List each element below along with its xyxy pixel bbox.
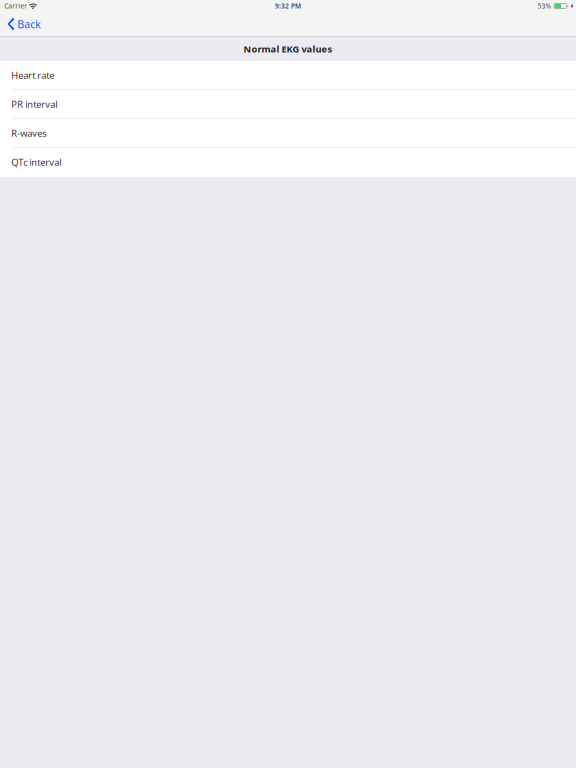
staticText: Heart rate: [11, 69, 54, 81]
staticText: PR interval: [11, 98, 57, 110]
staticText: 9:32 PM: [275, 2, 301, 10]
staticText: Normal EKG values: [243, 43, 332, 55]
staticText: R-waves: [11, 127, 46, 139]
button[interactable]: Back: [0, 12, 49, 36]
button[interactable]: PR interval: [0, 90, 576, 119]
button[interactable]: QTc interval: [0, 148, 576, 177]
button[interactable]: Heart rate: [0, 61, 576, 90]
staticText: Carrier: [4, 2, 27, 10]
staticText: QTc interval: [11, 156, 61, 168]
staticText: 53%: [537, 2, 551, 10]
staticText: Back: [17, 17, 41, 31]
button[interactable]: R-waves: [0, 119, 576, 148]
